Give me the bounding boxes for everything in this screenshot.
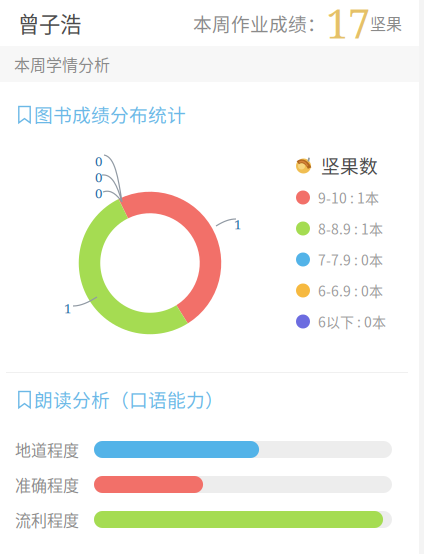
staticText: 8-8.9 : 1本 [318,218,383,239]
staticText: 1 [64,299,71,317]
staticText: 朗读分析（口语能力） [34,385,224,412]
staticText: 1 [234,215,241,233]
staticText: 0 [95,152,102,170]
staticText: 17 [326,0,370,50]
staticText: 6-6.9 : 0本 [318,280,383,301]
staticText: 本周学情分析 [14,52,110,76]
staticText: 6以下 : 0本 [318,311,386,332]
staticText: 0 [95,184,102,202]
staticText: 0 [95,168,102,186]
staticText: 7-7.9 : 0本 [318,249,383,270]
staticText: 坚果数 [321,151,378,178]
staticText: 准确程度 [15,473,79,496]
staticText: 图书成绩分布统计 [34,100,186,127]
staticText: 曾子浩 [18,8,81,38]
staticText: 流利程度 [15,508,79,531]
staticText: 地道程度 [15,438,79,461]
staticText: 坚果 [370,11,402,35]
staticText: 9-10 : 1本 [318,187,379,208]
staticText: 本周作业成绩： [193,9,326,36]
